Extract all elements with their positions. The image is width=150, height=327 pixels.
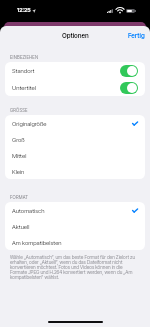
button[interactable]: Untertitel bbox=[5, 79, 145, 96]
button[interactable]: Am kompatibelsten bbox=[5, 234, 145, 250]
button[interactable]: Toggle bbox=[120, 82, 138, 94]
button[interactable]: Groß bbox=[5, 131, 145, 147]
button[interactable]: Toggle bbox=[120, 65, 138, 77]
button[interactable]: Standort bbox=[5, 62, 145, 79]
staticText: Wähle „Automatisch“, um das beste Format… bbox=[10, 254, 139, 280]
staticText: Klein bbox=[12, 168, 25, 175]
staticText: 12:25 bbox=[17, 7, 31, 14]
staticText: Groß bbox=[12, 136, 25, 143]
staticText: Untertitel bbox=[12, 84, 36, 91]
staticText: EINBEZIEHEN bbox=[10, 55, 39, 60]
staticText: Optionen bbox=[62, 32, 89, 40]
staticText: GRÖSSE bbox=[10, 108, 28, 113]
staticText: Mittel bbox=[12, 152, 27, 159]
staticText: Originalgröße bbox=[12, 120, 47, 127]
button[interactable]: Automatisch bbox=[5, 202, 145, 218]
staticText: Aktuell bbox=[12, 223, 30, 230]
button[interactable]: Originalgröße bbox=[5, 115, 145, 131]
button[interactable]: Klein bbox=[5, 163, 145, 179]
staticText: FORMAT bbox=[10, 195, 29, 200]
button[interactable]: Aktuell bbox=[5, 218, 145, 234]
button[interactable]: Mittel bbox=[5, 147, 145, 163]
staticText: Am kompatibelsten bbox=[12, 239, 62, 246]
staticText: Standort bbox=[12, 67, 35, 74]
staticText: Automatisch bbox=[12, 207, 45, 214]
staticText: Fertig bbox=[128, 32, 145, 40]
button[interactable]: Fertig bbox=[121, 29, 150, 43]
